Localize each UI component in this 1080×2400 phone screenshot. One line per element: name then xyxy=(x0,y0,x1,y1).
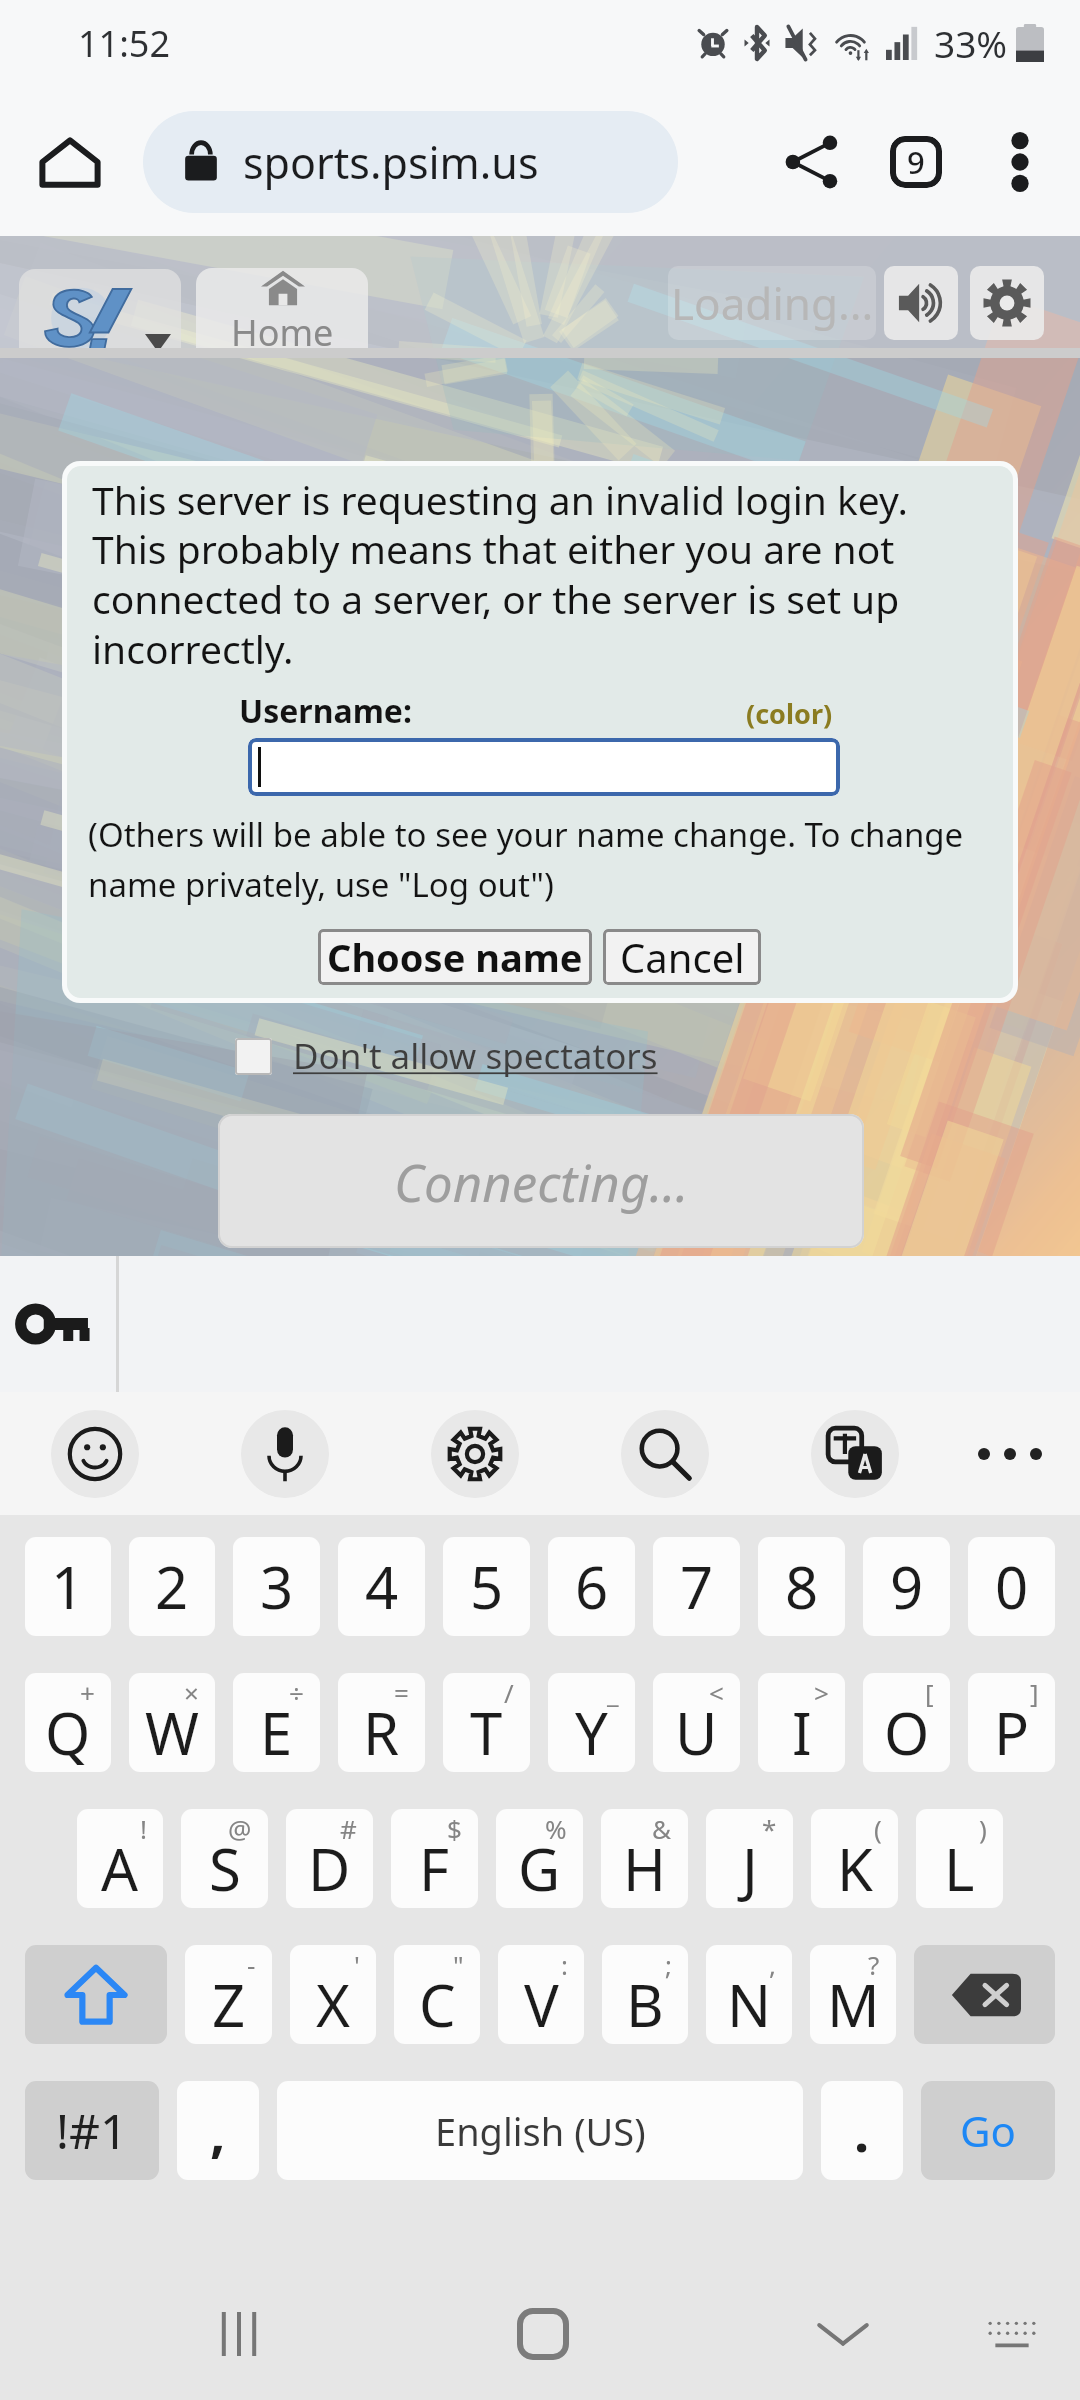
button[interactable]: Home xyxy=(196,268,368,358)
staticText: I xyxy=(792,1693,812,1772)
button[interactable] xyxy=(19,269,181,358)
button[interactable]: S xyxy=(181,1809,268,1908)
staticText: W xyxy=(145,1693,199,1772)
button[interactable]: E xyxy=(233,1673,320,1772)
button[interactable]: 5 xyxy=(443,1537,530,1636)
button[interactable]: F xyxy=(391,1809,478,1908)
button[interactable]: K xyxy=(811,1809,898,1908)
button[interactable]: Search xyxy=(621,1410,709,1498)
staticText: H xyxy=(623,1829,666,1908)
button[interactable]: !#1 xyxy=(25,2081,159,2180)
button[interactable]: Translate xyxy=(811,1410,899,1498)
staticText: O xyxy=(884,1693,930,1772)
button[interactable]: Connecting... xyxy=(218,1114,864,1248)
button[interactable]: More options xyxy=(968,110,1072,214)
button[interactable]: Sound xyxy=(884,266,958,340)
staticText: S xyxy=(209,1829,241,1908)
button[interactable]: U xyxy=(653,1673,740,1772)
button[interactable]: 2 xyxy=(129,1537,215,1636)
button[interactable]: Z xyxy=(185,1945,272,2044)
staticText: , xyxy=(210,2094,226,2168)
button[interactable]: 3 xyxy=(233,1537,320,1636)
staticText: : xyxy=(561,1947,568,1982)
staticText: T xyxy=(470,1693,503,1772)
button[interactable]: J xyxy=(706,1809,793,1908)
staticText: [ xyxy=(925,1675,934,1710)
button[interactable]: Home xyxy=(493,2284,593,2384)
staticText: 8 xyxy=(785,1547,819,1626)
button[interactable]: N xyxy=(706,1945,792,2044)
button[interactable]: 7 xyxy=(653,1537,740,1636)
button[interactable]: H xyxy=(601,1809,688,1908)
button[interactable]: Shift xyxy=(25,1945,167,2044)
button[interactable]: Keyboard settings xyxy=(431,1410,519,1498)
staticText: < xyxy=(709,1675,724,1710)
button[interactable]: , xyxy=(177,2081,259,2180)
button[interactable]: W xyxy=(129,1673,215,1772)
staticText: R xyxy=(363,1693,400,1772)
button[interactable]: Don't allow spectators xyxy=(235,1032,658,1080)
staticText: × xyxy=(184,1675,199,1710)
button[interactable]: 0 xyxy=(968,1537,1055,1636)
staticText: Username: xyxy=(239,689,412,733)
staticText: , xyxy=(769,1947,776,1982)
button[interactable]: 6 xyxy=(548,1537,635,1636)
button[interactable] xyxy=(248,738,840,796)
button[interactable]: G xyxy=(496,1809,583,1908)
button[interactable]: Tabs xyxy=(864,110,968,214)
button[interactable]: Voice input xyxy=(241,1410,329,1498)
staticText: D xyxy=(308,1829,351,1908)
button[interactable]: Recents xyxy=(189,2284,289,2384)
button[interactable]: R xyxy=(338,1673,425,1772)
staticText: A xyxy=(101,1829,139,1908)
staticText: 0 xyxy=(995,1547,1029,1626)
staticText: + xyxy=(80,1675,95,1710)
staticText: Home xyxy=(231,308,334,357)
button[interactable]: sports.psim.us xyxy=(143,111,678,213)
button[interactable]: Backspace xyxy=(914,1945,1055,2044)
staticText: 3 xyxy=(260,1547,294,1626)
button[interactable]: B xyxy=(602,1945,688,2044)
button[interactable]: Hide keyboard xyxy=(793,2284,893,2384)
staticText: This server is requesting an invalid log… xyxy=(92,473,908,676)
staticText: Choose name xyxy=(327,931,583,983)
button[interactable]: Q xyxy=(25,1673,111,1772)
staticText: 2 xyxy=(155,1547,189,1626)
staticText: G xyxy=(518,1829,561,1908)
button[interactable]: 8 xyxy=(758,1537,845,1636)
button[interactable]: M xyxy=(810,1945,896,2044)
button[interactable]: Share xyxy=(760,110,864,214)
button[interactable]: C xyxy=(394,1945,480,2044)
staticText: _ xyxy=(607,1675,619,1710)
button[interactable]: Home xyxy=(22,114,118,210)
button[interactable]: 1 xyxy=(25,1537,111,1636)
button[interactable]: Go xyxy=(921,2081,1055,2180)
button[interactable]: Settings xyxy=(970,266,1044,340)
button[interactable]: English (US) xyxy=(277,2081,803,2180)
staticText: ( xyxy=(874,1811,882,1846)
button[interactable]: X xyxy=(290,1945,376,2044)
button[interactable]: . xyxy=(821,2081,903,2180)
button[interactable]: Cancel xyxy=(603,929,761,985)
button[interactable]: More xyxy=(967,1411,1053,1497)
button[interactable]: O xyxy=(863,1673,950,1772)
staticText: # xyxy=(340,1811,357,1846)
button[interactable]: A xyxy=(77,1809,163,1908)
button[interactable]: 4 xyxy=(338,1537,425,1636)
button[interactable]: 9 xyxy=(863,1537,950,1636)
button[interactable]: Emoji xyxy=(51,1410,139,1498)
staticText: (Others will be able to see your name ch… xyxy=(88,812,964,907)
button[interactable]: Y xyxy=(548,1673,635,1772)
button[interactable]: P xyxy=(968,1673,1055,1772)
button[interactable]: V xyxy=(498,1945,584,2044)
button[interactable]: D xyxy=(286,1809,373,1908)
button[interactable]: Choose name xyxy=(318,929,592,985)
staticText: 9 xyxy=(890,1547,924,1626)
staticText: 7 xyxy=(680,1547,714,1626)
staticText: B xyxy=(626,1965,664,2044)
button[interactable]: Switch keyboard xyxy=(962,2284,1062,2384)
button[interactable]: I xyxy=(758,1673,845,1772)
button[interactable]: T xyxy=(443,1673,530,1772)
staticText: - xyxy=(247,1947,256,1982)
button[interactable]: L xyxy=(916,1809,1003,1908)
